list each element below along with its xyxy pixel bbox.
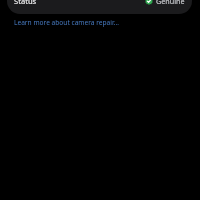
button[interactable]: Status	[7, 0, 192, 14]
staticText: Status	[14, 0, 37, 6]
staticText: Genuine	[156, 0, 185, 6]
button[interactable]: Learn more about camera repair…	[14, 18, 119, 27]
other: Genuine part verified	[145, 0, 153, 5]
staticText: Learn more about camera repair…	[14, 18, 119, 27]
